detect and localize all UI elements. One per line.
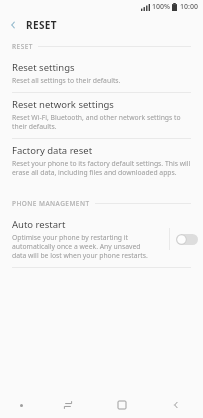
button[interactable]: More options [0,392,42,418]
staticText: erase all data, including files and down… [12,168,177,177]
staticText: 100% [152,2,170,12]
staticText: PHONE MANAGEMENT [12,199,90,208]
staticText: data will be lost when your phone restar… [12,251,148,260]
button[interactable]: Auto restart [170,224,203,254]
staticText: Reset network settings [12,98,114,111]
staticText: automatically once a week. Any unsaved [12,242,141,251]
button[interactable]: Navigate up [0,14,26,36]
staticText: RESET [12,42,33,51]
staticText: Reset your phone to its factory default … [12,159,191,168]
button[interactable]: Factory data reset [0,139,203,184]
staticText: Optimise your phone by restarting it [12,233,128,242]
staticText: Reset Wi-Fi, Bluetooth, and other networ… [12,113,181,122]
button[interactable]: Reset settings [0,56,203,92]
button[interactable]: Back [149,392,203,418]
staticText: RESET [26,18,58,32]
staticText: 10:00 [180,2,198,12]
button[interactable]: Recents [42,392,94,418]
staticText: their defaults. [12,122,57,131]
staticText: Factory data reset [12,144,93,157]
staticText: Reset settings [12,61,75,74]
button[interactable]: Home [94,392,149,418]
button[interactable]: Reset network settings [0,93,203,138]
staticText: Reset all settings to their defaults. [12,76,121,85]
button[interactable]: Auto restart [0,213,203,267]
staticText: Auto restart [12,218,66,231]
